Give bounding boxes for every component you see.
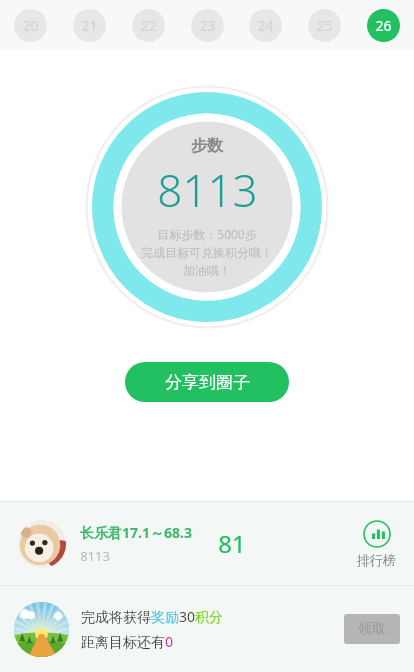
- button[interactable]: 20: [14, 9, 47, 42]
- button[interactable]: 分享到圈子: [125, 362, 289, 402]
- staticText: 分享到圈子: [165, 372, 250, 393]
- staticText: 完成将获得奖励30积分: [81, 607, 224, 626]
- button[interactable]: 领取: [344, 614, 400, 644]
- staticText: 23: [199, 16, 216, 35]
- staticText: 24: [257, 16, 274, 35]
- button[interactable]: 排行榜: [357, 520, 396, 568]
- button[interactable]: 23: [191, 9, 224, 42]
- staticText: 8113: [157, 160, 258, 220]
- staticText: 目标步数：5000步: [157, 226, 257, 242]
- staticText: 完成目标可兑换积分哦！: [141, 245, 273, 260]
- staticText: 26: [375, 16, 392, 35]
- button[interactable]: 完成将获得奖励30积分: [0, 586, 414, 672]
- button[interactable]: 26: [367, 9, 400, 42]
- button[interactable]: 22: [132, 9, 165, 42]
- button[interactable]: 24: [249, 9, 282, 42]
- staticText: 长乐君17.1～68.3: [80, 523, 192, 542]
- staticText: 步数: [191, 136, 223, 156]
- staticText: 加油哦！: [183, 263, 231, 278]
- staticText: 距离目标还有0: [81, 632, 174, 651]
- staticText: 8113: [80, 547, 110, 565]
- button[interactable]: 25: [308, 9, 341, 42]
- button[interactable]: 21: [73, 9, 106, 42]
- staticText: 25: [316, 16, 333, 35]
- staticText: 20: [22, 16, 39, 35]
- staticText: 排行榜: [357, 552, 396, 568]
- staticText: 22: [140, 16, 157, 35]
- staticText: 81: [218, 527, 246, 560]
- staticText: 21: [81, 16, 98, 35]
- button[interactable]: 长乐君17.1～68.3: [0, 502, 414, 585]
- staticText: 领取: [358, 620, 386, 638]
